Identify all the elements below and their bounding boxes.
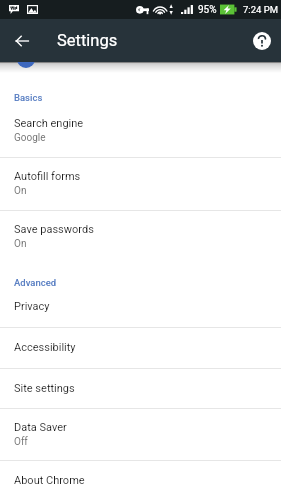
button[interactable]: Privacy	[0, 287, 281, 327]
staticText: Accessibility	[14, 341, 76, 354]
button[interactable]: Search engine	[0, 105, 281, 157]
staticText: Basics	[14, 92, 43, 103]
staticText: On	[14, 185, 27, 197]
button[interactable]: Autofill forms	[0, 158, 281, 210]
button[interactable]: Data Saver	[0, 409, 281, 460]
button[interactable]: Back	[1, 19, 43, 62]
staticText: Privacy	[14, 300, 50, 313]
staticText: Save passwords	[14, 223, 94, 236]
button[interactable]: Help	[243, 19, 281, 62]
staticText: Off	[14, 436, 28, 448]
staticText: About Chrome	[14, 474, 85, 487]
staticText: Advanced	[14, 277, 57, 288]
button[interactable]: Save passwords	[0, 211, 281, 263]
staticText: 95%	[198, 4, 217, 16]
staticText: 7:24 PM	[243, 4, 278, 15]
staticText: Search engine	[14, 117, 84, 130]
staticText: Autofill forms	[14, 170, 81, 183]
staticText: Site settings	[14, 382, 75, 395]
staticText: Data Saver	[14, 421, 67, 434]
staticText: Google	[14, 132, 46, 144]
staticText: Settings	[57, 31, 118, 50]
staticText: On	[14, 238, 27, 250]
button[interactable]: About Chrome	[0, 461, 281, 500]
button[interactable]: Accessibility	[0, 328, 281, 368]
button[interactable]: Site settings	[0, 369, 281, 408]
